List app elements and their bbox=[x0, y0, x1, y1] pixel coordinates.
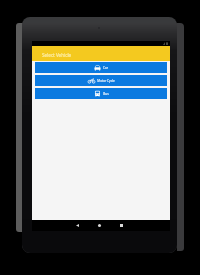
button[interactable]: Bus bbox=[35, 88, 167, 99]
button[interactable]: Motor Cycle bbox=[35, 75, 167, 86]
button[interactable]: Recents bbox=[110, 220, 132, 231]
staticText: Bus bbox=[103, 92, 109, 96]
button[interactable]: Back bbox=[66, 220, 88, 231]
button[interactable]: Car bbox=[35, 62, 167, 73]
staticText: Car bbox=[103, 66, 108, 70]
staticText: Select Vehicle bbox=[42, 52, 72, 58]
staticText: Motor Cycle bbox=[97, 79, 115, 83]
button[interactable]: Home bbox=[88, 220, 110, 231]
